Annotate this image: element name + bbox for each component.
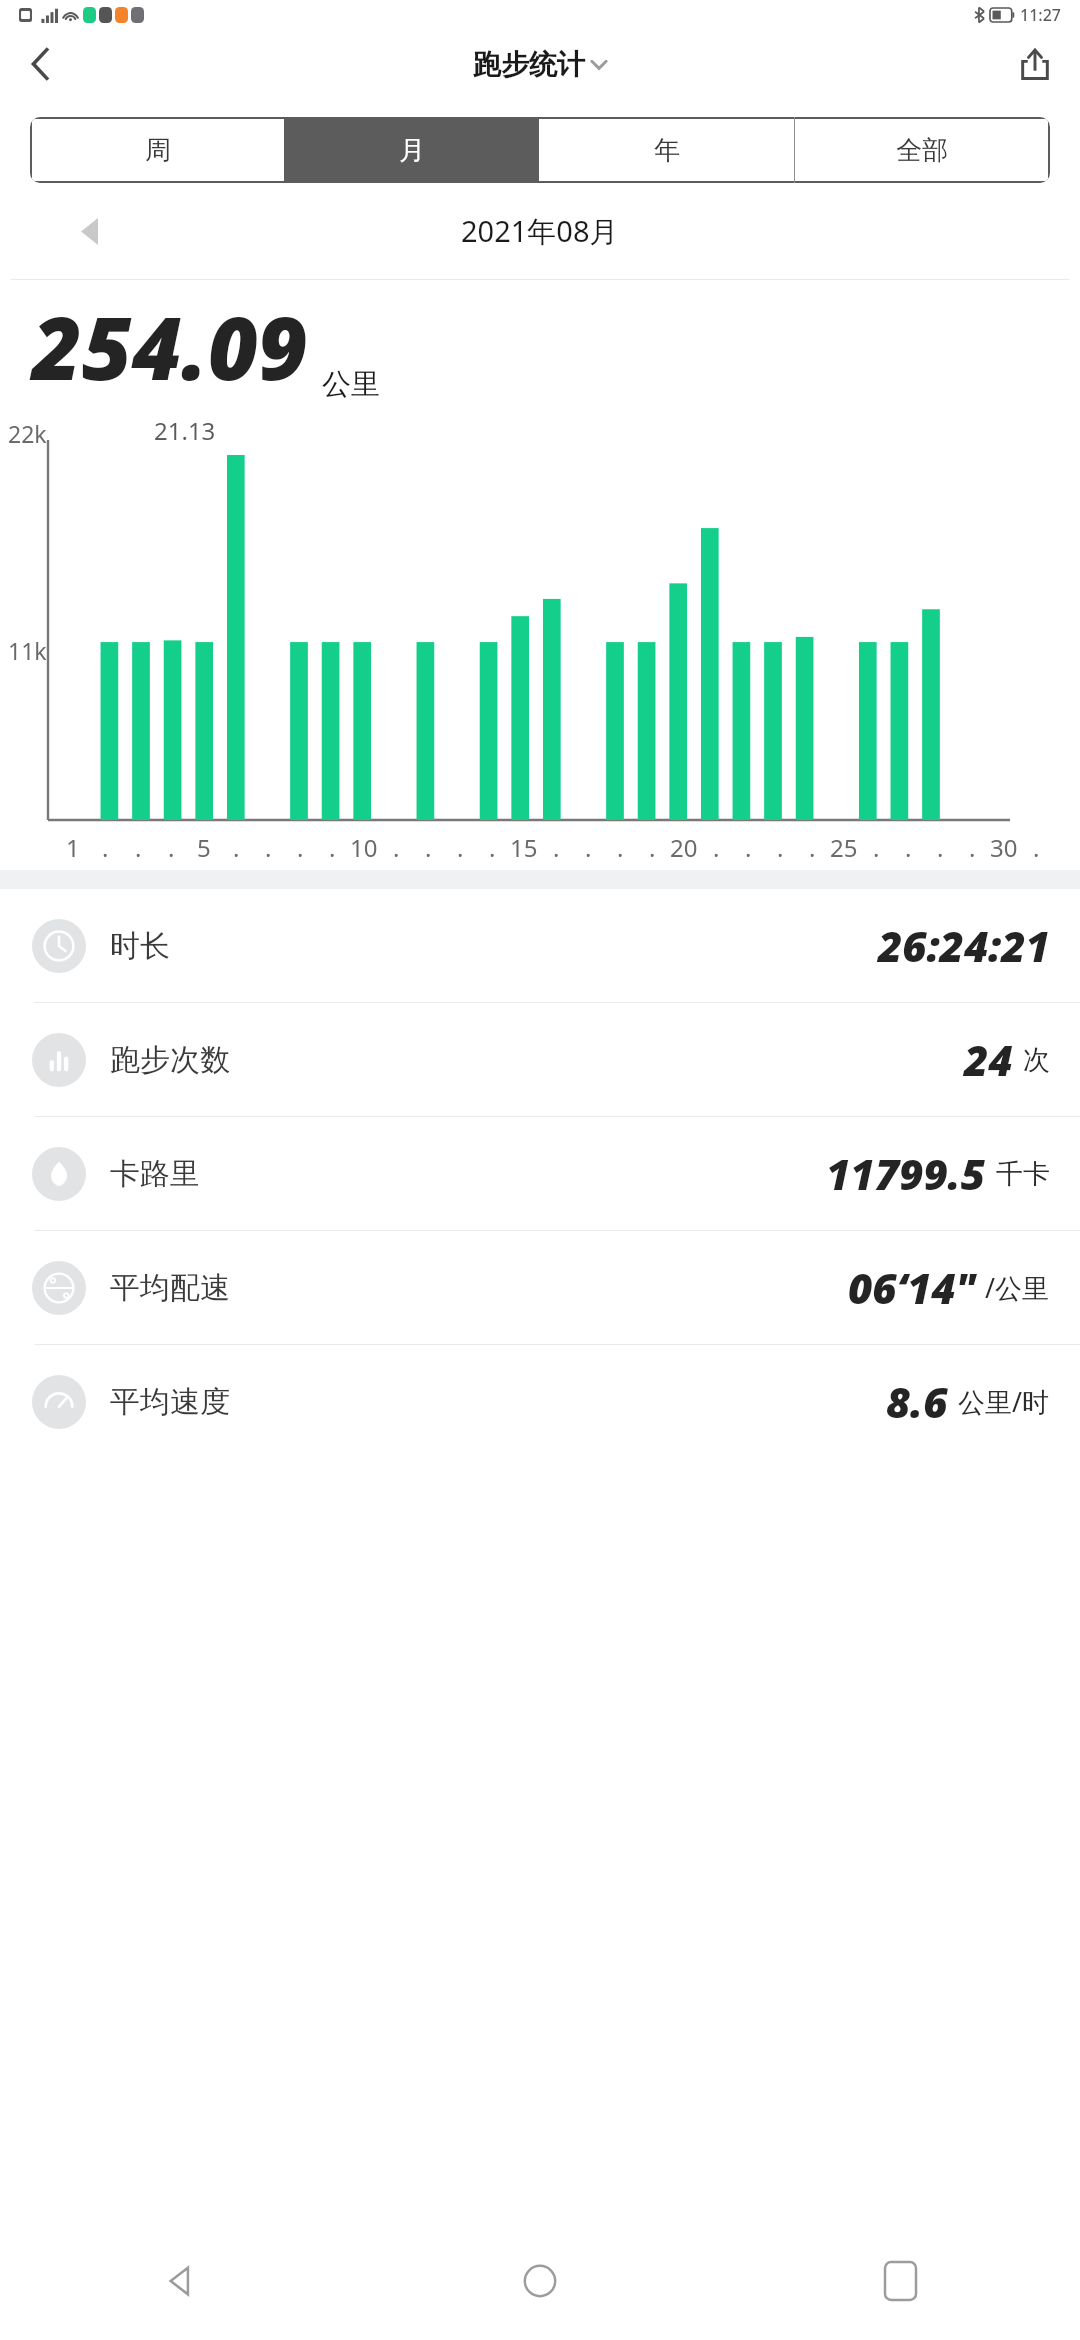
staticText: 11:27 xyxy=(1020,4,1061,26)
staticText: . xyxy=(457,831,464,864)
button[interactable]: Recents xyxy=(720,2222,1080,2340)
staticText: . xyxy=(969,831,976,864)
button[interactable]: 周 xyxy=(32,119,284,181)
staticText: . xyxy=(297,831,304,864)
staticText: 年 xyxy=(654,134,680,167)
staticText: 跑步次数 xyxy=(110,1041,230,1079)
staticText: . xyxy=(265,831,272,864)
staticText: 公里 xyxy=(322,366,380,403)
staticText: 254.09 xyxy=(32,288,308,405)
button[interactable]: 卡路里 xyxy=(0,1117,1080,1230)
staticText: 1 xyxy=(66,831,80,864)
staticText: . xyxy=(168,831,175,864)
staticText: . xyxy=(425,831,432,864)
staticText: . xyxy=(1033,831,1040,864)
staticText: . xyxy=(617,831,624,864)
staticText: . xyxy=(393,831,400,864)
staticText: 千卡 xyxy=(996,1157,1050,1191)
staticText: 24 xyxy=(964,1031,1013,1088)
staticText: . xyxy=(489,831,496,864)
staticText: . xyxy=(233,831,240,864)
staticText: . xyxy=(873,831,880,864)
button[interactable]: 跑步次数 xyxy=(0,1003,1080,1116)
staticText: 周 xyxy=(145,134,171,167)
staticText: 06‘14" xyxy=(848,1259,975,1316)
staticText: . xyxy=(809,831,816,864)
staticText: 30 xyxy=(990,831,1018,864)
staticText: . xyxy=(937,831,944,864)
button[interactable]: 时长 xyxy=(0,889,1080,1002)
staticText: 次 xyxy=(1023,1043,1050,1077)
staticText: . xyxy=(553,831,560,864)
staticText: 卡路里 xyxy=(110,1155,200,1193)
staticText: 2021年08月 xyxy=(461,211,619,251)
staticText: 11799.5 xyxy=(826,1145,986,1202)
button[interactable]: Previous month xyxy=(60,202,118,260)
button[interactable]: Back xyxy=(12,35,70,93)
staticText: 月 xyxy=(399,134,425,167)
staticText: . xyxy=(135,831,142,864)
button[interactable]: 月 xyxy=(284,119,539,181)
staticText: 25 xyxy=(830,831,858,864)
button[interactable]: Back xyxy=(0,2222,360,2340)
staticText: . xyxy=(649,831,656,864)
button[interactable]: 跑步统计 xyxy=(473,47,607,82)
staticText: 平均配速 xyxy=(110,1269,230,1307)
staticText: . xyxy=(329,831,336,864)
staticText: . xyxy=(905,831,912,864)
staticText: . xyxy=(713,831,720,864)
staticText: . xyxy=(102,831,109,864)
staticText: 公里/时 xyxy=(958,1383,1050,1420)
button[interactable]: 平均速度 xyxy=(0,1345,1080,1458)
staticText: 26:24:21 xyxy=(878,917,1050,974)
staticText: 22k xyxy=(8,418,47,449)
staticText: 21.13 xyxy=(154,414,216,447)
button[interactable]: Home xyxy=(360,2222,720,2340)
button[interactable]: 平均配速 xyxy=(0,1231,1080,1344)
staticText: /公里 xyxy=(985,1269,1050,1306)
staticText: . xyxy=(745,831,752,864)
staticText: 平均速度 xyxy=(110,1383,230,1421)
staticText: . xyxy=(585,831,592,864)
button[interactable]: Share xyxy=(1004,33,1066,95)
staticText: 8.6 xyxy=(886,1373,948,1430)
staticText: 全部 xyxy=(896,134,948,167)
button[interactable]: 年 xyxy=(539,119,794,181)
staticText: . xyxy=(777,831,784,864)
staticText: 11k xyxy=(8,635,47,666)
button[interactable]: 全部 xyxy=(795,119,1048,181)
staticText: 跑步统计 xyxy=(473,47,585,82)
staticText: 时长 xyxy=(110,927,170,965)
staticText: 20 xyxy=(670,831,698,864)
staticText: 15 xyxy=(510,831,538,864)
staticText: 5 xyxy=(197,831,211,864)
staticText: 10 xyxy=(350,831,378,864)
